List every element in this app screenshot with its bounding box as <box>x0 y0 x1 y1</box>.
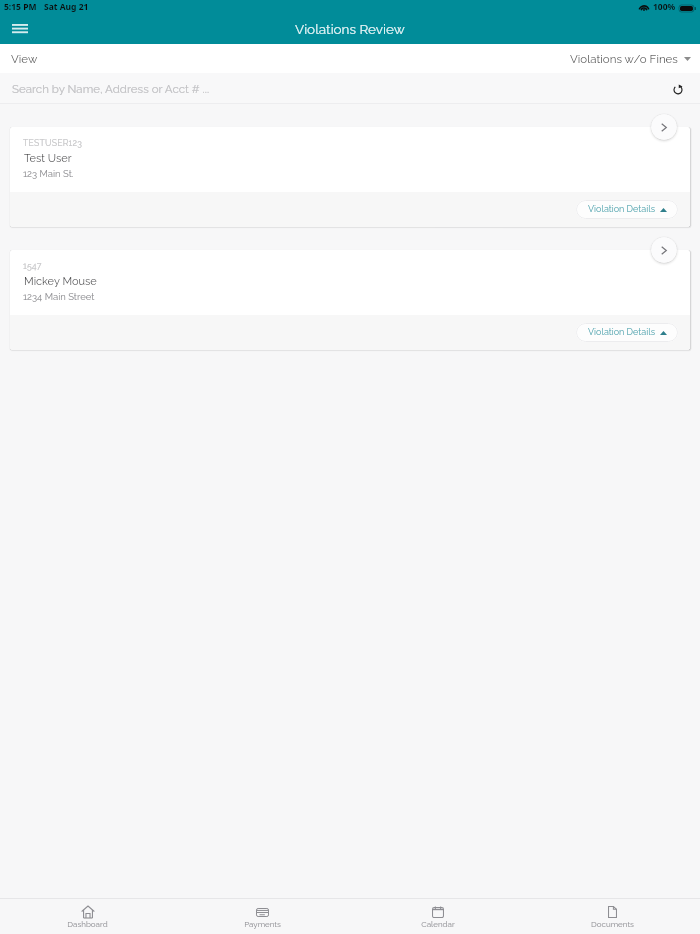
button[interactable]: 1547 <box>10 250 690 350</box>
button[interactable]: Violation Details <box>576 200 678 219</box>
staticText: 123 Main St. <box>23 168 74 179</box>
staticText: Documents <box>591 919 634 928</box>
button[interactable]: Calendar <box>350 899 525 934</box>
staticText: 1547 <box>23 261 42 271</box>
button[interactable]: Open details <box>651 114 677 140</box>
staticText: Dashboard <box>67 919 108 928</box>
staticText: Sat Aug 21 <box>44 1 89 13</box>
staticText: Mickey Mouse <box>24 275 97 288</box>
button[interactable]: Menu <box>0 16 40 44</box>
button[interactable]: Dashboard <box>0 899 175 934</box>
staticText: TESTUSER123 <box>23 138 82 148</box>
staticText: 100% <box>653 1 676 13</box>
staticText: Violations w/o Fines <box>570 52 678 66</box>
staticText: View <box>11 52 38 66</box>
staticText: 1234 Main Street <box>23 291 95 302</box>
button[interactable]: TESTUSER123 <box>10 127 690 227</box>
staticText: Violations Review <box>295 21 405 37</box>
staticText: Test User <box>24 152 72 165</box>
button[interactable]: Violation Details <box>576 323 678 342</box>
button[interactable]: Open details <box>651 237 677 263</box>
button[interactable]: Refresh <box>668 79 688 99</box>
staticText: Calendar <box>421 919 455 928</box>
staticText: Payments <box>244 919 281 928</box>
staticText: 5:15 PM <box>4 1 37 13</box>
button[interactable]: Documents <box>525 899 700 934</box>
staticText: Search by Name, Address or Acct # ... <box>12 82 210 96</box>
staticText: Violation Details <box>588 204 655 215</box>
button[interactable]: Violations w/o Fines <box>562 48 700 70</box>
button[interactable]: Payments <box>175 899 350 934</box>
staticText: Violation Details <box>588 327 655 338</box>
